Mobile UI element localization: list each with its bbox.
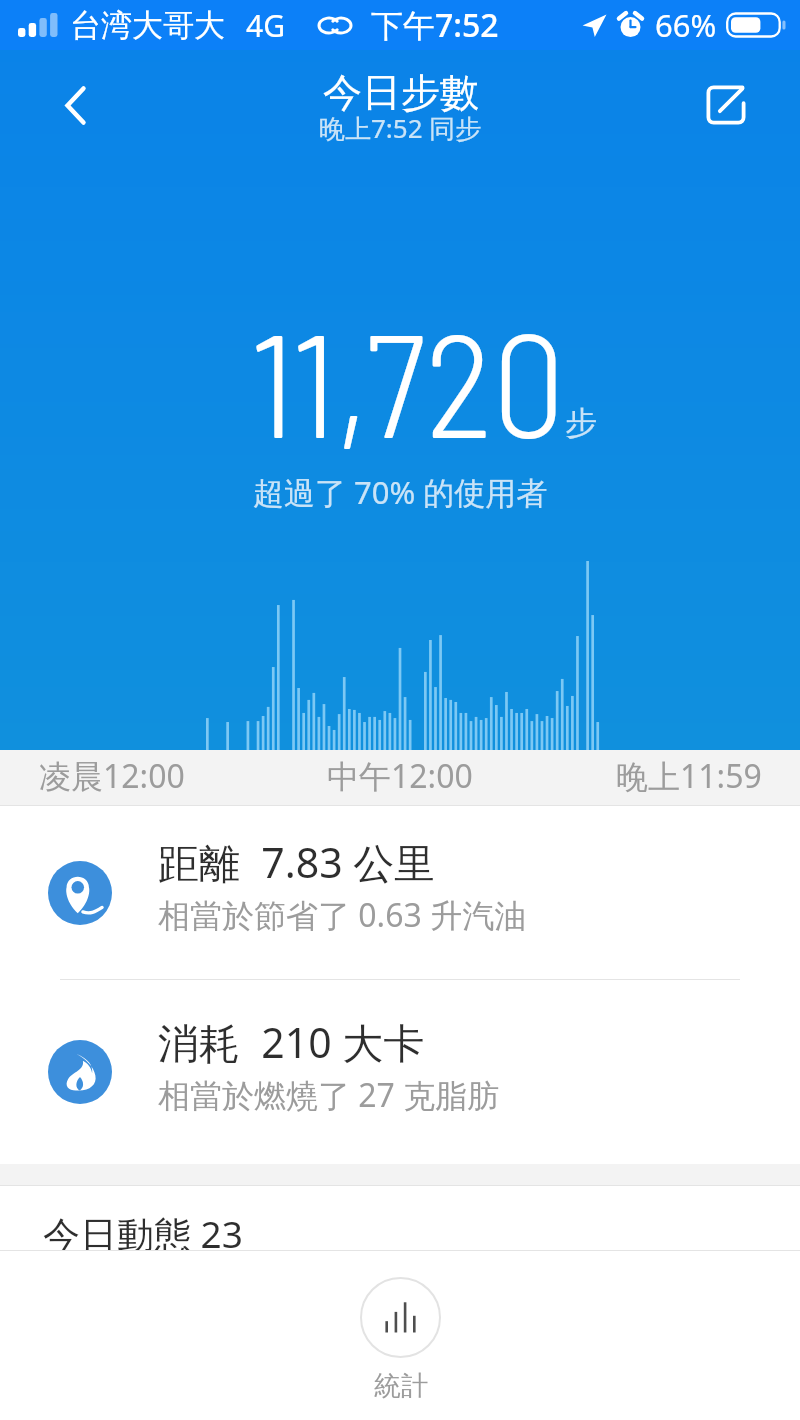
staticText: 4G bbox=[246, 5, 285, 46]
staticText: 中午12:00 bbox=[327, 754, 473, 798]
button[interactable]: 距離 7.83 公里 bbox=[0, 806, 800, 979]
staticText: 超過了 70% 的使用者 bbox=[253, 471, 548, 513]
staticText: 11,720 bbox=[251, 293, 566, 467]
button[interactable]: Share bbox=[671, 50, 781, 160]
staticText: 統計 bbox=[374, 1369, 428, 1403]
staticText: 下午7:52 bbox=[371, 3, 499, 47]
staticText: 相當於節省了 0.63 升汽油 bbox=[158, 893, 527, 937]
staticText: 台湾大哥大 bbox=[70, 6, 225, 45]
staticText: 今日動態 23 bbox=[43, 1208, 243, 1259]
staticText: 66% bbox=[655, 4, 717, 46]
button[interactable]: Back bbox=[20, 50, 130, 160]
staticText: 今日步數 bbox=[323, 68, 479, 117]
staticText: 消耗 210 大卡 bbox=[158, 1014, 425, 1070]
staticText: 晚上11:59 bbox=[616, 754, 762, 798]
button[interactable]: 統計 bbox=[360, 1277, 441, 1403]
staticText: 凌晨12:00 bbox=[39, 754, 185, 798]
button[interactable]: 消耗 210 大卡 bbox=[0, 980, 800, 1164]
staticText: 步 bbox=[565, 403, 597, 443]
staticText: 相當於燃燒了 27 克脂肪 bbox=[158, 1073, 500, 1117]
staticText: 距離 7.83 公里 bbox=[158, 834, 436, 890]
staticText: 晚上7:52 同步 bbox=[319, 110, 482, 146]
